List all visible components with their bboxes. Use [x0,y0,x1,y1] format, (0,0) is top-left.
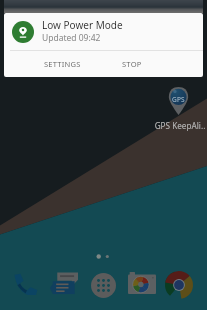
staticText: Low Power Mode [42,18,123,32]
staticText: STOP [122,59,142,69]
button[interactable]: SETTINGS [34,51,91,77]
staticText: SETTINGS [44,59,81,69]
button[interactable]: GPS KeepAlive [151,84,207,130]
button[interactable]: Chrome [165,271,193,299]
staticText: GPS [172,95,185,104]
button[interactable]: Phone [13,272,38,295]
staticText: Updated 09:42 [42,32,101,44]
button[interactable]: Low Power Mode [4,13,203,50]
button[interactable]: Messaging [50,272,78,295]
staticText: GPS KeepAli.. [152,120,207,131]
button[interactable]: STOP [112,51,152,77]
button[interactable]: Apps [91,273,116,298]
button[interactable]: Camera [128,272,156,294]
